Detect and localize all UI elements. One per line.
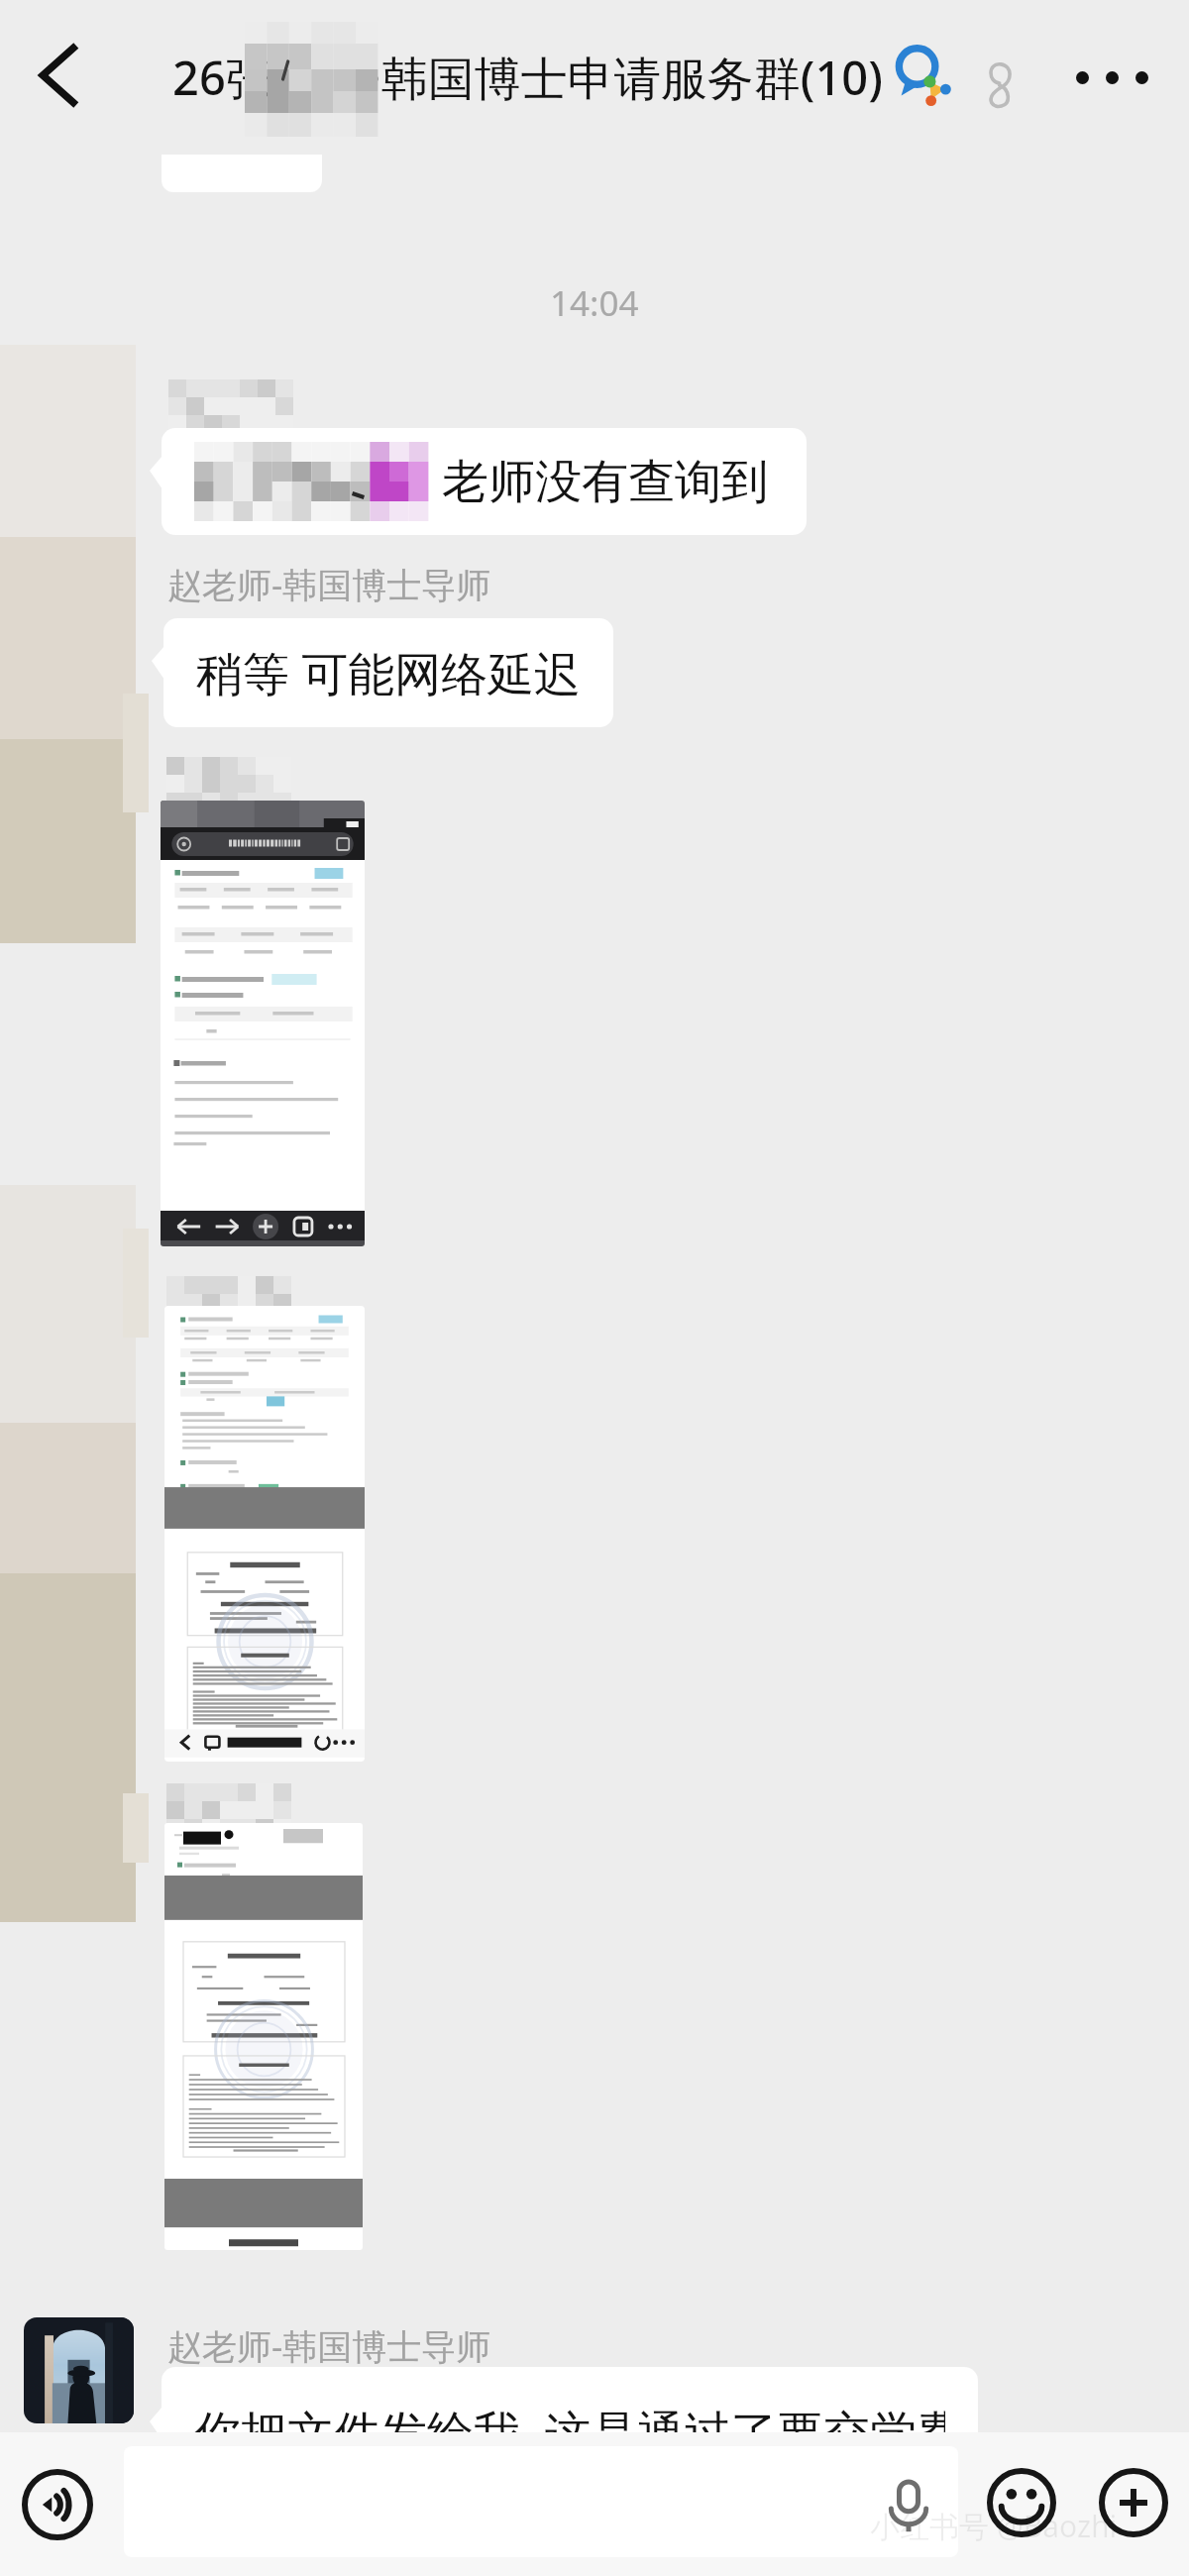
button[interactable]: Shared screenshot — [164, 1823, 363, 2250]
button[interactable]: Voice message — [866, 2462, 951, 2547]
button[interactable]: Shared screenshot — [161, 801, 365, 1246]
staticText: 14:04 — [550, 279, 639, 327]
button[interactable]: More options — [1091, 2460, 1176, 2545]
staticText: 赵老师-韩国博士导师 — [167, 561, 491, 608]
button[interactable]: Voice input — [13, 2460, 102, 2549]
button[interactable]: Shared screenshot — [164, 1306, 365, 1762]
staticText: 26张 — [172, 46, 272, 109]
staticText: 小红书号 @Baozhi — [870, 2506, 1118, 2546]
staticText: 稍等 可能网络延迟 — [196, 641, 581, 704]
button[interactable]: More options — [1064, 30, 1159, 125]
button[interactable]: Message input field — [124, 2446, 958, 2557]
button[interactable]: 你把文件发给我 这是通过了要交学费 — [162, 2367, 978, 2496]
staticText: 老师没有查询到 — [442, 453, 768, 511]
button[interactable]: WeCom — [892, 44, 955, 107]
button[interactable]: Mute — [981, 61, 1017, 109]
button[interactable]: Back — [14, 30, 105, 121]
staticText: ·韩国博士申请服务群(10) — [369, 46, 883, 109]
button[interactable]: 稍等 可能网络延迟 — [163, 618, 613, 727]
button[interactable]: Emoji — [979, 2460, 1064, 2545]
button[interactable]: 老师没有查询到 — [162, 428, 807, 535]
staticText: 赵老师-韩国博士导师 — [167, 2322, 491, 2370]
button[interactable]: Avatar — [24, 2317, 134, 2423]
staticText: 你把文件发给我 这是通过了要交学费 — [194, 2400, 945, 2463]
